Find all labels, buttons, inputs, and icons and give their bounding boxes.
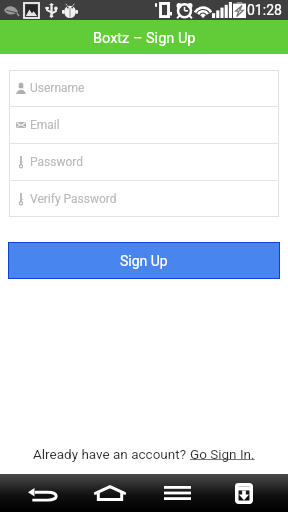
button[interactable]: Back (10, 474, 76, 512)
button[interactable]: Home (77, 474, 143, 512)
staticText: Email (30, 118, 60, 132)
button[interactable]: Email (9, 107, 279, 143)
staticText: 01:28 (247, 2, 282, 18)
button[interactable]: Go Sign In. (190, 446, 255, 462)
button[interactable]: Screenshot (211, 474, 277, 512)
staticText: Verify Password (30, 192, 117, 206)
button[interactable]: Password (9, 144, 279, 180)
staticText: Sign Up (120, 253, 168, 269)
staticText: Already have an account? (33, 446, 190, 462)
button[interactable]: Recent apps (144, 474, 210, 512)
button[interactable]: Username (9, 70, 279, 106)
button[interactable]: Verify Password (9, 181, 279, 217)
staticText: Boxtz – Sign Up (93, 30, 196, 47)
staticText: Password (30, 155, 84, 169)
staticText: Username (30, 81, 85, 95)
staticText: Go Sign In. (190, 446, 255, 462)
button[interactable]: Sign Up (8, 242, 280, 279)
